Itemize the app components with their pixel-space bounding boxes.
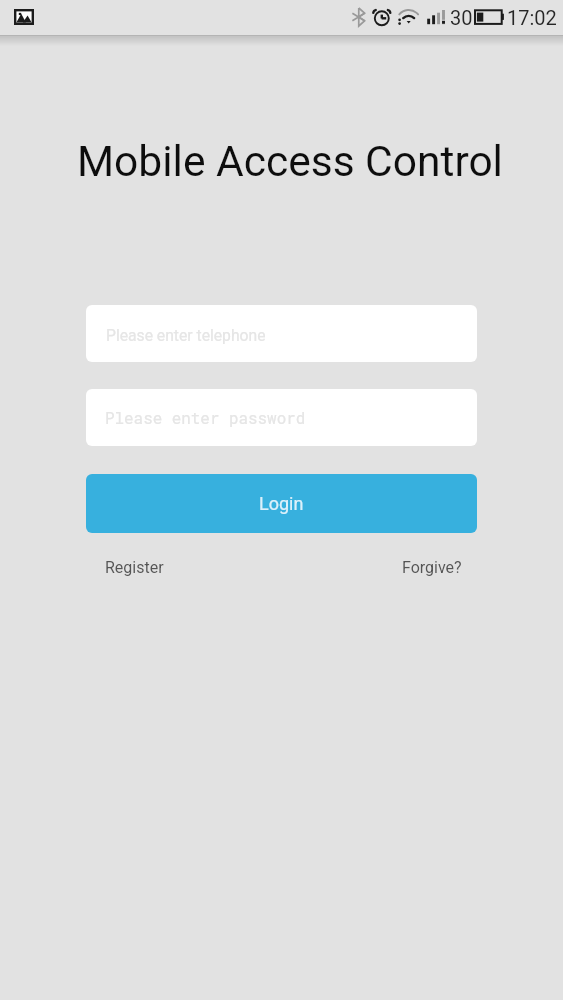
other: Screenshot notification [14,9,34,25]
staticText: Login [259,493,304,514]
button[interactable]: Please enter password [86,389,477,446]
button[interactable]: Login [86,474,477,533]
button[interactable]: Register [94,552,175,583]
staticText: 17:02 [507,6,557,29]
staticText: Register [105,558,164,577]
staticText: Please enter password [105,407,306,428]
button[interactable]: Please enter telephone [86,305,477,362]
staticText: 30 [450,6,473,29]
staticText: Please enter telephone [106,326,266,344]
button[interactable]: Forgive? [391,552,473,583]
staticText: Forgive? [402,558,462,577]
staticText: Mobile Access Control [77,137,503,187]
